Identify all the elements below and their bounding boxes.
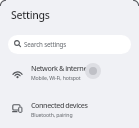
staticText: Network & internet	[31, 63, 90, 73]
staticText: Bluetooth, pairing	[31, 111, 73, 118]
button[interactable]: Network & internet	[0, 58, 139, 86]
staticText: Search settings	[24, 40, 67, 48]
staticText: Settings	[11, 8, 50, 22]
staticText: Mobile, Wi-Fi, hotspot	[31, 74, 81, 81]
button[interactable]: Search settings	[8, 35, 131, 54]
button[interactable]: Connected devices	[0, 95, 139, 123]
staticText: Connected devices	[31, 100, 88, 110]
